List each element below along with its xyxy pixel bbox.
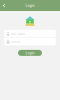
button[interactable]: Back: [0, 0, 8, 11]
staticText: Password: [11, 40, 20, 43]
button[interactable]: Password: [4, 38, 56, 45]
button[interactable]: Email address: [4, 30, 56, 37]
staticText: Email address: [11, 32, 25, 35]
button[interactable]: Login: [18, 50, 42, 56]
staticText: Login: [25, 3, 34, 8]
staticText: Login: [25, 51, 34, 55]
